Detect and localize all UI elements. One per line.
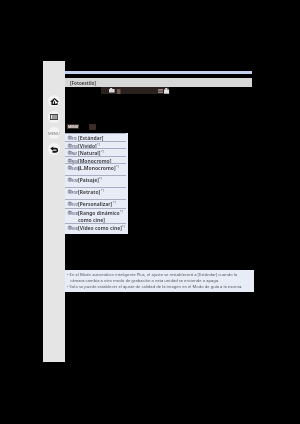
- staticText: [Rango dinámico como cine]: [78, 210, 120, 223]
- staticText: MENU: [48, 131, 60, 136]
- staticText: [Fotoestilo]: [70, 80, 96, 86]
- button[interactable]: CNEV: [65, 223, 128, 234]
- button[interactable]: Contents: [48, 111, 60, 123]
- button[interactable]: SCNY: [65, 175, 128, 187]
- staticText: MENU: [68, 124, 79, 129]
- staticText: *1: [97, 143, 101, 147]
- button[interactable]: STD: [65, 133, 128, 141]
- staticText: NAT: [72, 152, 78, 155]
- staticText: PORT: [72, 191, 79, 194]
- staticText: VIVD: [72, 145, 79, 148]
- staticText: *1: [116, 165, 120, 169]
- staticText: • Solo se puede establecer el ajuste de …: [67, 284, 243, 290]
- button[interactable]: LMON: [65, 163, 128, 175]
- button[interactable]: NAT: [65, 148, 128, 156]
- staticText: CUST: [72, 203, 79, 206]
- button[interactable]: MONO: [65, 156, 128, 163]
- staticText: SCNY: [72, 179, 79, 182]
- staticText: [Vídeo como cine]: [78, 225, 122, 232]
- staticText: [Estándar]: [78, 135, 104, 141]
- staticText: [Natural]: [78, 150, 101, 156]
- staticText: • En el Modo automático inteligente Plus…: [67, 272, 238, 278]
- button[interactable]: Back: [48, 143, 60, 155]
- staticText: CNEV: [72, 227, 79, 230]
- button[interactable]: VIVD: [65, 141, 128, 148]
- button[interactable]: PORT: [65, 187, 128, 199]
- staticText: *1: [122, 225, 126, 229]
- staticText: [Paisaje]: [78, 177, 99, 184]
- staticText: CNED: [72, 212, 79, 215]
- staticText: *1: [113, 201, 117, 205]
- button[interactable]: CNED: [65, 208, 128, 223]
- staticText: [Vívido]: [78, 143, 97, 148]
- staticText: [Monocromo]: [78, 158, 112, 163]
- staticText: STD: [72, 137, 77, 140]
- staticText: *1: [99, 177, 103, 181]
- staticText: [L.Monocromo]: [78, 165, 116, 172]
- staticText: LMON: [72, 167, 80, 170]
- staticText: *1: [101, 150, 105, 154]
- staticText: cámara cambia a otro modo de grabación o…: [67, 278, 220, 284]
- button[interactable]: Home: [48, 95, 60, 107]
- staticText: [Retrato]: [78, 189, 101, 196]
- staticText: *1: [101, 189, 105, 193]
- staticText: *1: [120, 210, 124, 214]
- button[interactable]: CUST: [65, 199, 128, 208]
- staticText: MONO: [72, 160, 80, 165]
- button[interactable]: Menu: [48, 127, 60, 139]
- staticText: [Personalizar]: [78, 201, 113, 208]
